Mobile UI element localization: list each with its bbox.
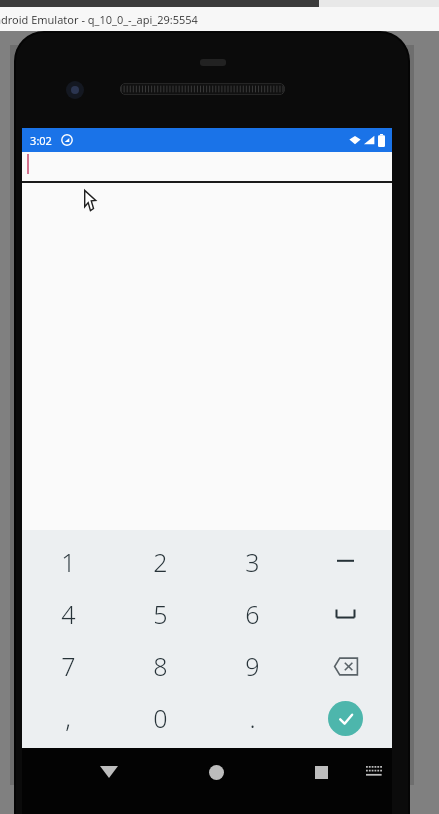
button[interactable]: Backspace xyxy=(299,640,392,692)
staticText: 0 xyxy=(153,701,168,735)
staticText: , xyxy=(65,701,71,735)
staticText: 1 xyxy=(61,545,76,579)
button[interactable]: 1 xyxy=(22,536,114,588)
staticText: 3:02 xyxy=(30,133,52,148)
button[interactable]: 3 xyxy=(206,536,299,588)
button[interactable]: 6 xyxy=(206,588,299,640)
button[interactable]: . xyxy=(206,692,299,744)
staticText: . xyxy=(249,701,256,735)
button[interactable] xyxy=(299,588,392,640)
button[interactable]: 0 xyxy=(114,692,206,744)
button[interactable]: Back xyxy=(93,756,125,788)
button[interactable]: 9 xyxy=(206,640,299,692)
staticText: 9 xyxy=(245,649,260,683)
button[interactable]: , xyxy=(22,692,114,744)
button[interactable]: 5 xyxy=(114,588,206,640)
staticText: 3 xyxy=(245,545,260,579)
button[interactable] xyxy=(22,152,392,186)
button[interactable]: Switch keyboard xyxy=(359,756,389,786)
staticText: 7 xyxy=(61,649,76,683)
staticText: 8 xyxy=(153,649,168,683)
staticText: ndroid Emulator - q_10_0_-_api_29:5554 xyxy=(0,12,198,27)
button[interactable]: 4 xyxy=(22,588,114,640)
staticText: 4 xyxy=(61,597,76,631)
button[interactable]: 8 xyxy=(114,640,206,692)
staticText: 2 xyxy=(153,545,168,579)
button[interactable]: Recent apps xyxy=(305,756,337,788)
button[interactable]: 2 xyxy=(114,536,206,588)
button[interactable]: 7 xyxy=(22,640,114,692)
button[interactable]: Home xyxy=(200,756,232,788)
staticText: 5 xyxy=(153,597,168,631)
button[interactable] xyxy=(299,536,392,588)
staticText: 6 xyxy=(245,597,260,631)
button[interactable]: Done xyxy=(299,692,392,744)
